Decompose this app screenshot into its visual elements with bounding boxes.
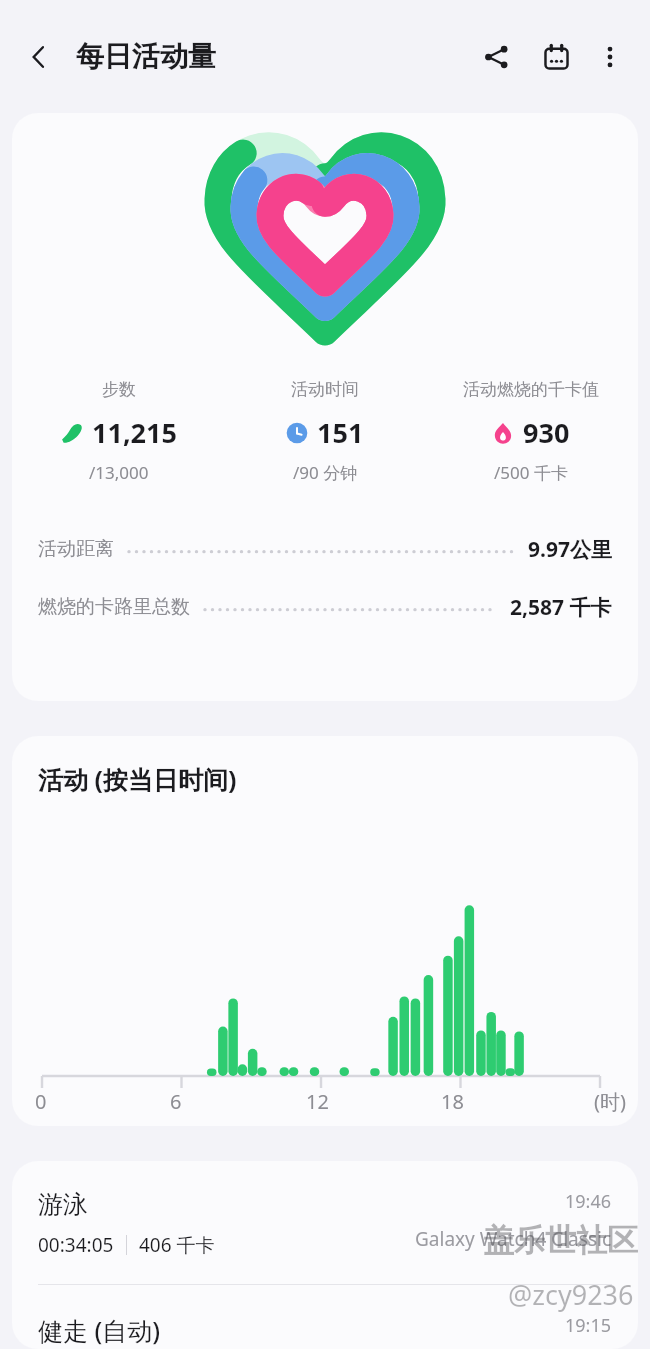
staticText: 燃烧的卡路里总数 [38,595,190,619]
staticText: 活动时间 [291,379,359,400]
button[interactable]: More options [586,33,634,81]
button[interactable]: Back [12,30,66,84]
button[interactable]: 游泳 [38,1189,612,1258]
button[interactable]: 健走 (自动) [38,1313,612,1349]
button[interactable]: 燃烧的卡路里总数 [38,578,612,636]
staticText: (时) [594,1088,626,1115]
staticText: 00:34:05 [38,1232,114,1258]
staticText: 活动距离 [38,537,114,561]
staticText: 151 [317,414,364,451]
staticText: 406 千卡 [139,1232,215,1258]
button[interactable]: Calendar [530,31,582,83]
staticText: 6 [170,1088,182,1115]
staticText: 12 [306,1088,329,1115]
staticText: 活动 (按当日时间) [38,762,237,796]
staticText: 930 [523,414,570,451]
staticText: 盖乐世社区 [483,1221,638,1260]
staticText: 0 [35,1088,47,1115]
staticText: 游泳 [38,1189,88,1220]
button[interactable]: 活动时间 [222,379,428,484]
staticText: 19:46 [565,1189,612,1214]
button[interactable]: 活动距离 [38,520,612,578]
staticText: 18 [441,1088,464,1115]
staticText: 每日活动量 [76,39,216,74]
staticText: 2,587 千卡 [510,593,612,622]
staticText: /90 分钟 [293,461,358,484]
staticText: 19:15 [565,1313,612,1338]
staticText: @zcy9236 [508,1276,634,1313]
staticText: /500 千卡 [494,461,568,484]
button[interactable]: Share [470,31,522,83]
staticText: 11,215 [92,414,177,451]
staticText: 9.97公里 [528,535,612,564]
staticText: /13,000 [89,461,149,484]
staticText: Galaxy Watch4 Classic [415,1226,612,1252]
button[interactable]: 活动燃烧的千卡值 [428,379,634,484]
button[interactable]: 步数 [16,379,222,484]
staticText: 健走 (自动) [38,1313,161,1347]
staticText: 活动燃烧的千卡值 [463,379,599,400]
staticText: 步数 [102,379,136,400]
